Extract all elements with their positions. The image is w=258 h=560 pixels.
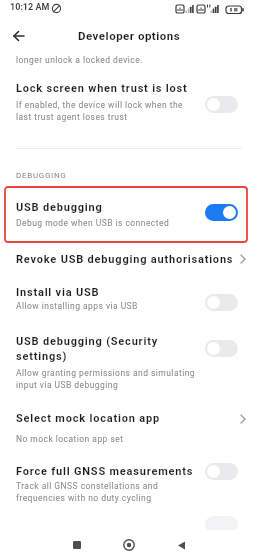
staticText: Debug mode when USB is connected [16, 218, 170, 228]
staticText: Lock screen when trust is lost [16, 82, 188, 95]
staticText: USB debugging (Security settings) [16, 335, 158, 363]
staticText: Revoke USB debugging authorisations [16, 253, 234, 266]
button[interactable] [205, 463, 238, 480]
button[interactable] [0, 278, 258, 320]
button[interactable] [0, 188, 258, 242]
staticText: 10:12 AM [10, 2, 50, 13]
button[interactable] [0, 20, 44, 54]
button[interactable] [0, 246, 258, 274]
button[interactable] [164, 530, 198, 560]
button[interactable] [0, 405, 258, 450]
button[interactable] [60, 530, 94, 560]
staticText: DEBUGGING [16, 171, 67, 180]
button[interactable] [205, 204, 238, 221]
staticText: Install via USB [16, 286, 100, 299]
button[interactable] [0, 70, 258, 132]
staticText: Developer options [78, 29, 181, 42]
staticText: Allow installing apps via USB [16, 301, 138, 311]
staticText: longer unlock a locked device. [16, 55, 143, 65]
staticText: Force full GNSS measurements [16, 465, 194, 478]
staticText: USB debugging [16, 201, 103, 214]
staticText: Select mock location app [16, 412, 160, 425]
staticText: Track all GNSS constellations and freque… [16, 481, 159, 503]
staticText: No mock location app set [16, 434, 124, 444]
staticText: If enabled, the device will lock when th… [16, 100, 183, 122]
button[interactable] [205, 340, 238, 357]
button[interactable] [0, 328, 258, 392]
button[interactable] [205, 294, 238, 311]
staticText: Allow granting permissions and simulatin… [16, 368, 196, 390]
button[interactable] [205, 96, 238, 113]
button[interactable] [0, 458, 258, 510]
button[interactable] [112, 530, 146, 560]
